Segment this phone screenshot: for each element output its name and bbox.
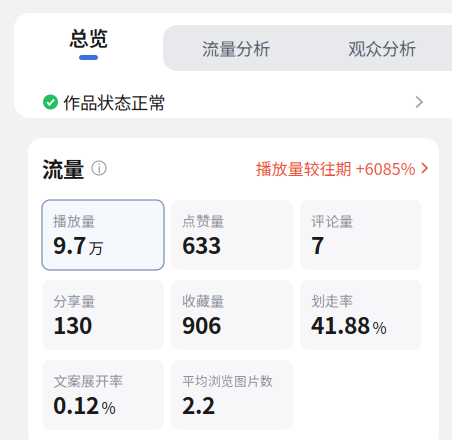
staticText: i [97, 159, 100, 177]
staticText: 41.88 [311, 308, 370, 340]
staticText: % [101, 396, 115, 418]
staticText: 流量 [42, 153, 84, 183]
staticText: % [372, 316, 386, 338]
staticText: 130 [53, 308, 92, 340]
button[interactable]: 文案展开率 [42, 360, 164, 430]
button[interactable]: 分享量 [42, 280, 164, 350]
staticText: 评论量 [311, 210, 353, 231]
staticText: 流量分析 [202, 35, 270, 61]
button[interactable]: 总览 [14, 13, 163, 71]
button[interactable]: 流量分析 [163, 25, 309, 71]
staticText: 9.7 [53, 228, 86, 260]
staticText: 0.12 [53, 388, 99, 420]
staticText: 平均浏览图片数 [182, 371, 273, 390]
button[interactable]: 评论量 [300, 200, 422, 270]
button[interactable]: 收藏量 [171, 280, 293, 350]
button[interactable]: 作品状态正常 [14, 87, 440, 117]
staticText: 点赞量 [182, 210, 224, 231]
staticText: 观众分析 [348, 35, 416, 61]
button[interactable]: 点赞量 [171, 200, 293, 270]
staticText: 收藏量 [182, 290, 224, 311]
staticText: 文案展开率 [53, 370, 123, 391]
staticText: 划走率 [311, 290, 353, 311]
staticText: 作品状态正常 [63, 89, 165, 115]
button[interactable]: 划走率 [300, 280, 422, 350]
button[interactable]: 播放量 [42, 200, 164, 270]
staticText: 7 [311, 228, 324, 260]
staticText: 播放量 [53, 210, 95, 231]
staticText: 分享量 [53, 290, 95, 311]
button[interactable]: 平均浏览图片数 [171, 360, 293, 430]
staticText: 906 [182, 308, 221, 340]
button[interactable]: 播放量较往期 +6085% [256, 156, 428, 180]
staticText: 总览 [68, 22, 108, 51]
button[interactable]: 观众分析 [309, 25, 452, 71]
staticText: 播放量较往期 +6085% [256, 156, 416, 180]
staticText: 2.2 [182, 388, 215, 420]
staticText: 633 [182, 228, 221, 260]
staticText: 万 [88, 236, 103, 258]
